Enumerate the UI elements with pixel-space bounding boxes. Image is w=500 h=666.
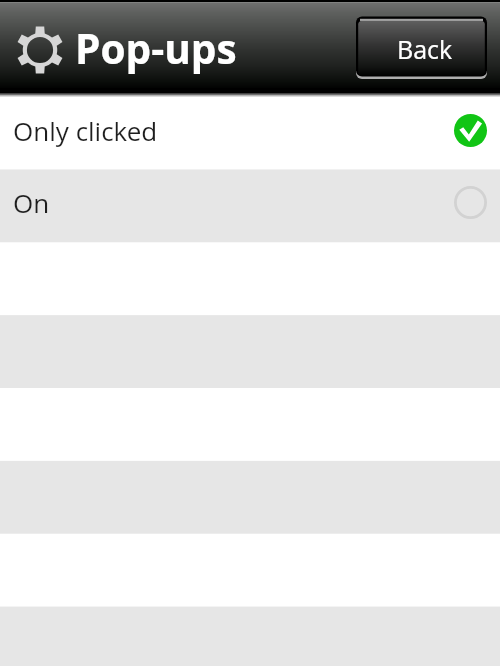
other: Selected [454,114,487,147]
staticText: On [13,185,50,220]
button[interactable]: Only clicked [0,97,500,170]
button[interactable]: On [0,169,500,242]
button[interactable]: Settings [15,25,65,75]
other: Not selected [454,186,487,219]
button[interactable]: Back [354,15,489,79]
staticText: Only clicked [13,113,158,148]
staticText: Back [397,32,453,66]
staticText: Pop-ups [75,21,237,76]
